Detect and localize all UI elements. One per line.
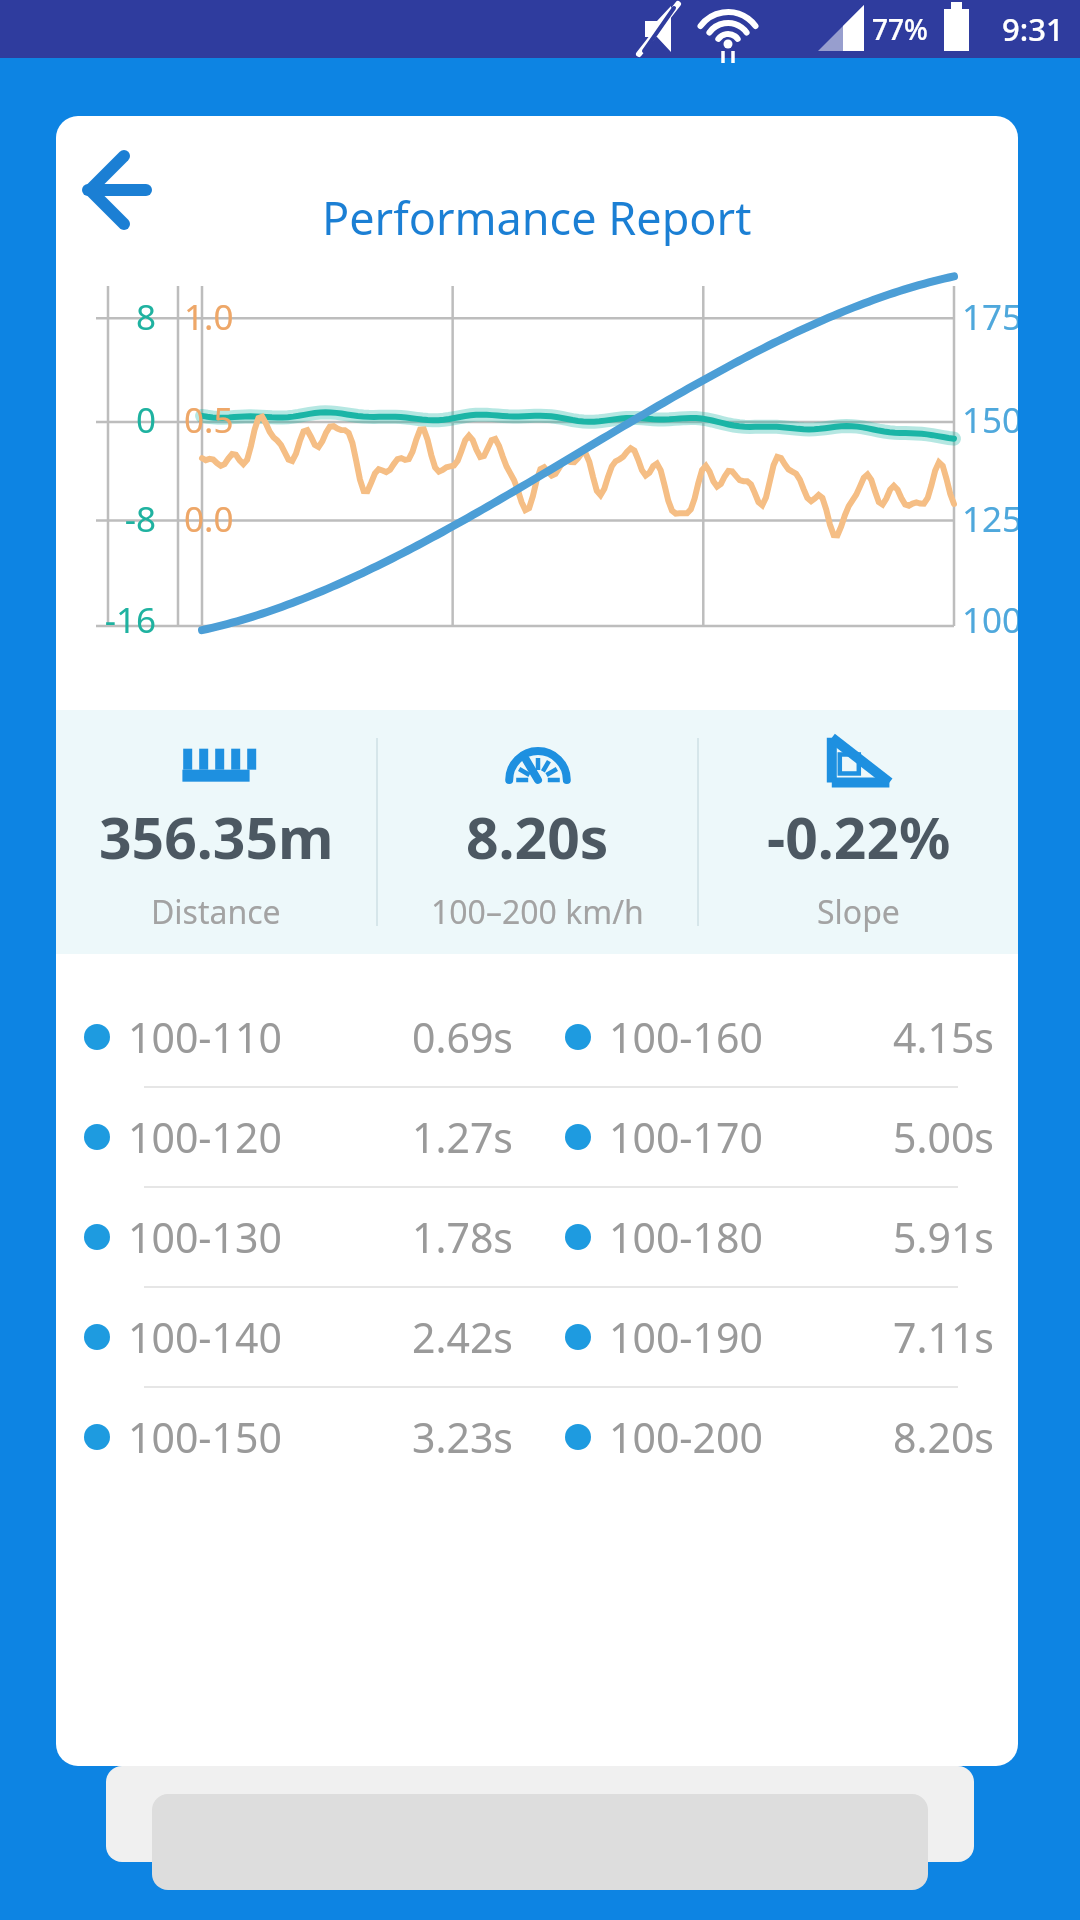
staticText: 100 — [962, 596, 1018, 644]
button[interactable]: 100-110 — [56, 988, 1018, 1086]
staticText: 8.20s — [763, 1409, 994, 1465]
staticText: 100-150 — [128, 1409, 282, 1465]
staticText: 150 — [962, 396, 1018, 444]
button[interactable]: 100-140 — [56, 1288, 1018, 1386]
staticText: 5.91s — [763, 1209, 994, 1265]
button[interactable]: 356.35m — [56, 710, 376, 954]
staticText: 100-200 — [609, 1409, 763, 1465]
staticText: 1.78s — [282, 1209, 513, 1265]
staticText: 1.0 — [184, 293, 264, 341]
staticText: 100-120 — [128, 1109, 282, 1165]
button[interactable]: 100-120 — [56, 1088, 1018, 1186]
staticText: 100-180 — [609, 1209, 763, 1265]
staticText: 8.20s — [466, 798, 609, 876]
staticText: 100-190 — [609, 1309, 763, 1365]
staticText: 4.15s — [763, 1009, 994, 1065]
staticText: 1.27s — [282, 1109, 513, 1165]
staticText: 7.11s — [763, 1309, 994, 1365]
staticText: 77% — [872, 10, 928, 48]
staticText: -0.22% — [767, 798, 951, 876]
staticText: 8 — [108, 293, 156, 341]
staticText: 0.0 — [184, 495, 264, 543]
staticText: 100-110 — [128, 1009, 282, 1065]
staticText: 125 — [962, 495, 1018, 543]
staticText: 356.35m — [99, 798, 334, 876]
staticText: 2.42s — [282, 1309, 513, 1365]
staticText: 175 — [962, 293, 1018, 341]
button[interactable]: Back — [68, 142, 164, 238]
staticText: -8 — [84, 495, 156, 543]
staticText: Slope — [817, 890, 900, 934]
staticText: Distance — [151, 890, 281, 934]
staticText: 100-170 — [609, 1109, 763, 1165]
staticText: 100-160 — [609, 1009, 763, 1065]
button[interactable]: 8.20s — [378, 710, 697, 954]
button[interactable]: 100-150 — [56, 1388, 1018, 1486]
staticText: 0.69s — [282, 1009, 513, 1065]
staticText: -16 — [66, 596, 156, 644]
staticText: 100–200 km/h — [431, 890, 644, 934]
staticText: 3.23s — [282, 1409, 513, 1465]
button[interactable]: -0.22% — [699, 710, 1018, 954]
staticText: 100-130 — [128, 1209, 282, 1265]
staticText: 5.00s — [763, 1109, 994, 1165]
staticText: 0 — [108, 396, 156, 444]
staticText: 100-140 — [128, 1309, 282, 1365]
staticText: 9:31 — [1002, 8, 1064, 50]
staticText: Performance Report — [322, 187, 752, 248]
button[interactable]: 100-130 — [56, 1188, 1018, 1286]
staticText: 0.5 — [184, 396, 264, 444]
